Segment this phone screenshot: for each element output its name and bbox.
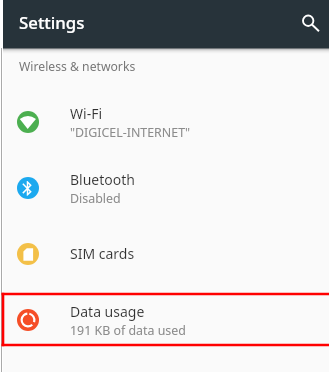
staticText: Data usage: [70, 302, 145, 321]
button[interactable]: Bluetooth: [0, 155, 329, 221]
staticText: Settings: [19, 11, 85, 34]
button[interactable]: Data usage: [0, 287, 329, 353]
staticText: Bluetooth: [70, 170, 135, 189]
staticText: Wi-Fi: [70, 104, 103, 123]
staticText: "DIGICEL-INTERNET": [70, 124, 191, 141]
staticText: 191 KB of data used: [70, 322, 186, 339]
staticText: SIM cards: [70, 244, 135, 263]
staticText: Disabled: [70, 190, 121, 207]
staticText: Wireless & networks: [19, 58, 136, 75]
button[interactable]: Search: [294, 9, 326, 41]
button[interactable]: Wi-Fi: [0, 89, 329, 155]
button[interactable]: SIM cards: [0, 221, 329, 287]
